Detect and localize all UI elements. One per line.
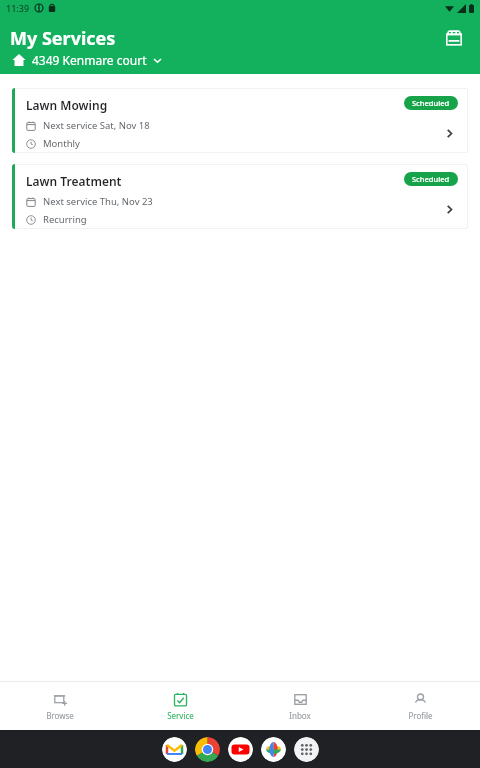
staticText: Profile — [408, 710, 433, 721]
button[interactable]: Browse — [0, 682, 120, 730]
button[interactable]: Store — [438, 22, 470, 54]
staticText: Browse — [46, 710, 74, 721]
button[interactable] — [294, 737, 319, 762]
button[interactable]: Service — [120, 682, 240, 730]
staticText: Monthly — [43, 137, 80, 150]
button[interactable]: 4349 Kenmare court — [10, 50, 165, 70]
staticText: Next service Thu, Nov 23 — [43, 195, 153, 208]
staticText: My Services — [10, 26, 116, 51]
staticText: Lawn Mowing — [26, 97, 108, 113]
button[interactable] — [228, 737, 253, 762]
button[interactable] — [261, 737, 286, 762]
button[interactable]: Lawn Treatment — [12, 164, 468, 229]
staticText: Inbox — [289, 710, 311, 721]
button[interactable]: Open Lawn Treatment — [440, 200, 458, 218]
staticText: 4349 Kenmare court — [32, 52, 147, 68]
staticText: Next service Sat, Nov 18 — [43, 119, 150, 132]
button[interactable]: Scheduled — [404, 172, 458, 186]
button[interactable]: Inbox — [240, 682, 360, 730]
button[interactable]: Profile — [360, 682, 480, 730]
staticText: Scheduled — [412, 98, 450, 108]
staticText: Recurring — [43, 213, 87, 226]
staticText: 11:39 — [6, 2, 30, 14]
button[interactable]: Lawn Mowing — [12, 88, 468, 153]
button[interactable] — [162, 737, 187, 762]
button[interactable] — [195, 737, 220, 762]
staticText: Lawn Treatment — [26, 173, 122, 189]
button[interactable]: Open Lawn Mowing — [440, 124, 458, 142]
button[interactable]: Scheduled — [404, 96, 458, 110]
staticText: Scheduled — [412, 174, 450, 184]
staticText: Service — [167, 710, 194, 721]
